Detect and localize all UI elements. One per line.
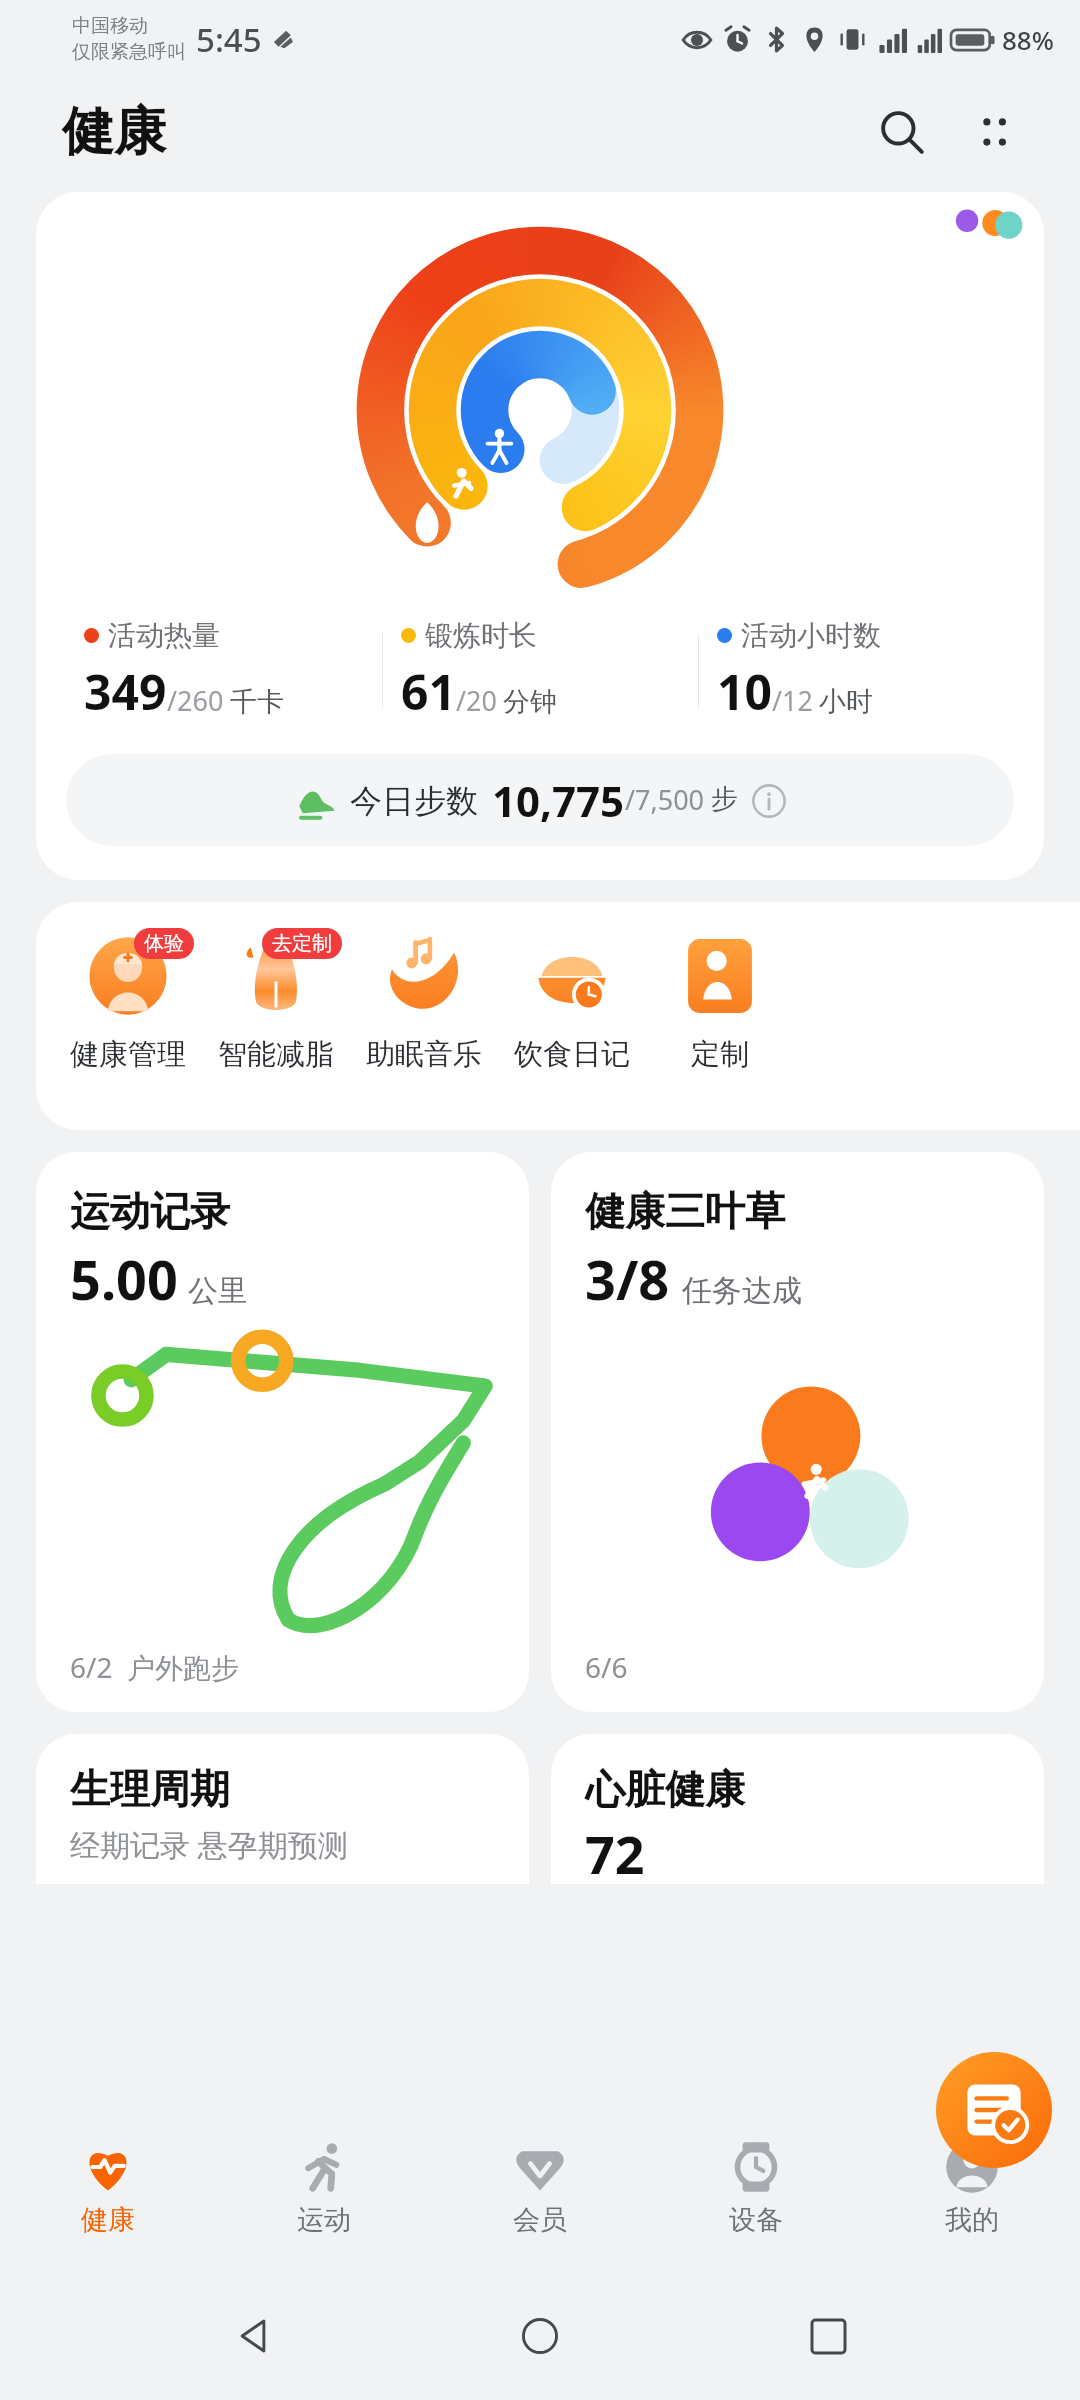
button[interactable]: 心脏健康	[551, 1734, 1044, 1884]
button[interactable]: 设备	[648, 2104, 864, 2272]
staticText: 设备	[729, 2203, 783, 2237]
staticText: 10	[717, 659, 772, 724]
staticText: 中国移动	[72, 14, 148, 38]
staticText: 88%	[1002, 22, 1054, 57]
staticText: 体验	[144, 931, 184, 956]
staticText: 步	[711, 782, 738, 816]
button[interactable]: 运动	[216, 2104, 432, 2272]
staticText: /260	[167, 682, 224, 719]
button[interactable]: Record	[936, 2052, 1052, 2168]
staticText: 小时	[819, 685, 873, 719]
staticText: 活动热量	[108, 618, 220, 653]
button[interactable]: Profile	[932, 192, 1044, 254]
button[interactable]: 会员	[432, 2104, 648, 2272]
button[interactable]: More options	[954, 92, 1034, 172]
staticText: /12	[772, 682, 813, 719]
staticText: 经期记录 悬孕期预测	[70, 1824, 348, 1865]
button[interactable]: 体验	[54, 926, 202, 1073]
staticText: 健康管理	[70, 1036, 186, 1073]
staticText: 运动	[297, 2203, 351, 2237]
button[interactable]: Back	[218, 2301, 288, 2371]
button[interactable]: 去定制	[202, 926, 350, 1073]
staticText: /20	[456, 682, 497, 719]
staticText: 助眠音乐	[366, 1036, 482, 1073]
button[interactable]: Profile	[36, 192, 1044, 880]
button[interactable]: 健康三叶草	[551, 1152, 1044, 1712]
staticText: 10,775	[492, 772, 625, 829]
button[interactable]: 定制	[646, 926, 794, 1073]
staticText: 349	[84, 659, 167, 724]
staticText: 运动记录	[70, 1186, 230, 1236]
button[interactable]: 健康	[0, 2104, 216, 2272]
staticText: 生理周期	[70, 1764, 230, 1814]
staticText: 千卡	[230, 685, 284, 719]
staticText: 锻炼时长	[425, 618, 537, 653]
staticText: 3/8	[585, 1242, 670, 1316]
button[interactable]: Home	[505, 2301, 575, 2371]
staticText: 心脏健康	[585, 1764, 745, 1814]
staticText: 今日步数	[350, 781, 478, 821]
staticText: 72	[585, 1818, 645, 1884]
staticText: 定制	[691, 1036, 749, 1073]
staticText: 6/2 户外跑步	[70, 1648, 240, 1686]
staticText: 健康	[81, 2203, 135, 2237]
staticText: 公里	[188, 1272, 248, 1310]
staticText: 6/6	[585, 1648, 628, 1686]
button[interactable]: 饮食日记	[498, 926, 646, 1073]
staticText: 我的	[945, 2203, 999, 2237]
staticText: 61	[401, 659, 456, 724]
button[interactable]: 生理周期	[36, 1734, 529, 1884]
staticText: 分钟	[503, 685, 557, 719]
button[interactable]: 我的	[864, 2104, 1080, 2272]
button[interactable]: 助眠音乐	[350, 926, 498, 1073]
button[interactable]: 运动记录	[36, 1152, 529, 1712]
staticText: 任务达成	[682, 1272, 802, 1310]
staticText: 仅限紧急呼叫	[72, 40, 186, 64]
staticText: 健康三叶草	[585, 1186, 785, 1236]
button[interactable]: Recents	[793, 2301, 863, 2371]
staticText: 活动小时数	[741, 618, 881, 653]
staticText: /7,500	[625, 781, 705, 818]
button[interactable]: Search	[862, 92, 942, 172]
staticText: 饮食日记	[514, 1036, 630, 1073]
button[interactable]: 今日步数	[66, 754, 1014, 846]
staticText: 会员	[513, 2203, 567, 2237]
staticText: 健康	[62, 99, 166, 165]
staticText: 去定制	[272, 931, 332, 956]
staticText: 智能减脂	[218, 1036, 334, 1073]
staticText: 5:45	[196, 17, 262, 62]
staticText: 5.00	[70, 1242, 178, 1316]
